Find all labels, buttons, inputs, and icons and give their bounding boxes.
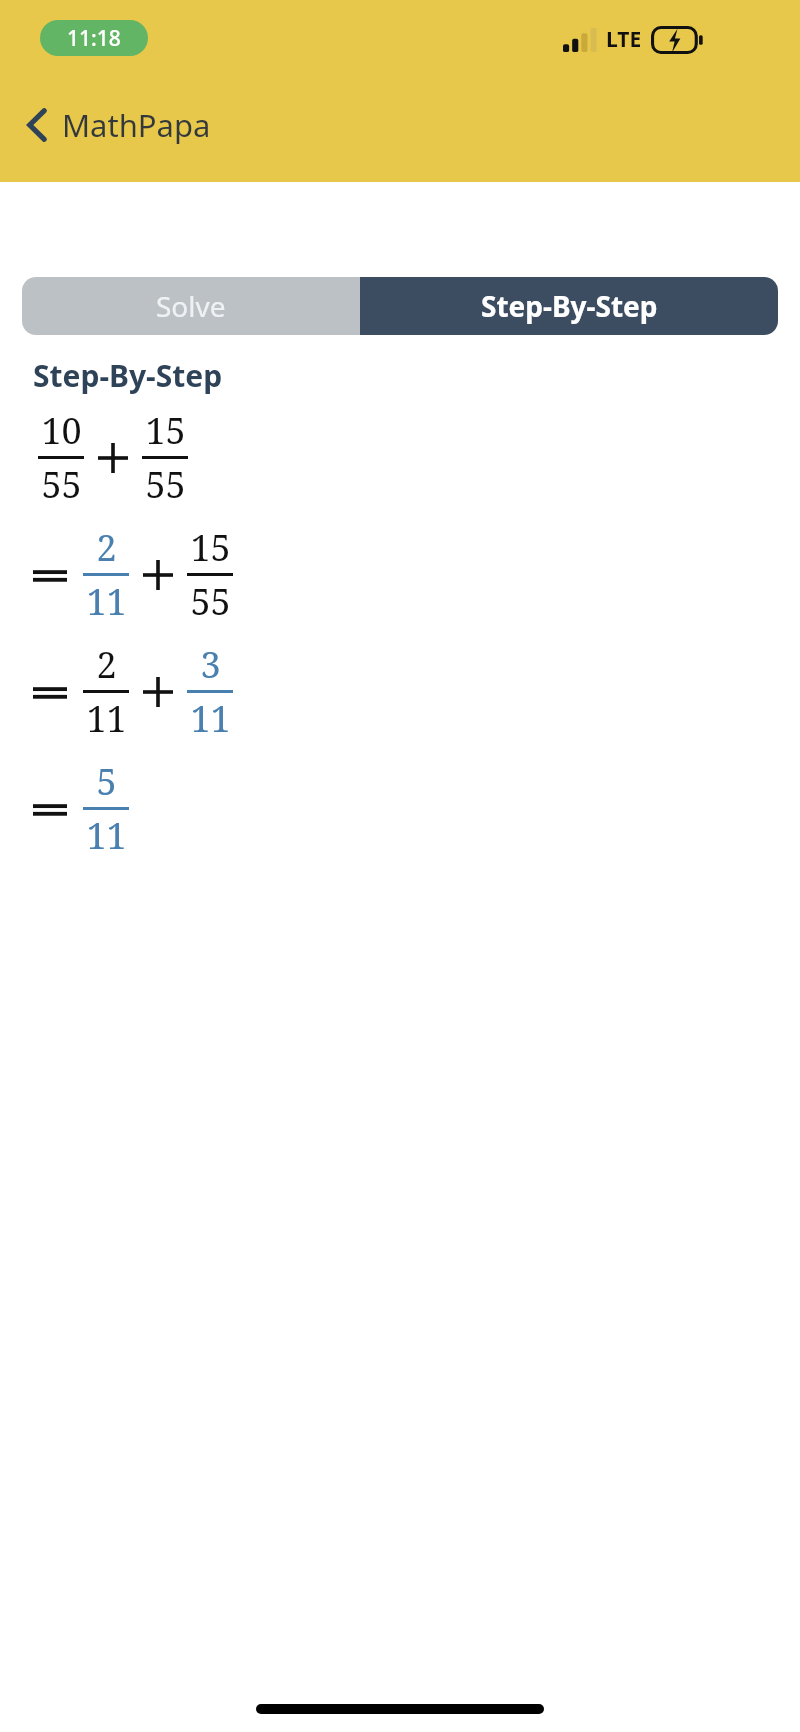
staticText: 55	[41, 460, 82, 509]
staticText: 55	[190, 577, 231, 626]
staticText: 11	[86, 694, 127, 743]
staticText: 3	[200, 640, 221, 689]
staticText: Step-By-Step	[481, 287, 658, 325]
staticText: Solve	[156, 287, 226, 325]
staticText: 11:18	[67, 24, 121, 53]
staticText: 11	[86, 577, 127, 626]
staticText: 15	[145, 406, 186, 455]
staticText: 2	[96, 640, 117, 689]
button[interactable]: Solve	[22, 277, 360, 335]
staticText: 15	[190, 523, 231, 572]
staticText: LTE	[606, 25, 642, 54]
button[interactable]: Step-By-Step	[360, 277, 778, 335]
staticText: 11	[86, 811, 127, 860]
staticText: MathPapa	[62, 104, 211, 146]
staticText: 55	[145, 460, 186, 509]
button[interactable]: Back	[18, 100, 217, 150]
other: Back	[24, 108, 50, 142]
staticText: Step-By-Step	[33, 355, 223, 396]
staticText: 2	[96, 523, 117, 572]
staticText: 11	[190, 694, 231, 743]
staticText: 10	[41, 406, 82, 455]
staticText: 5	[96, 757, 117, 806]
